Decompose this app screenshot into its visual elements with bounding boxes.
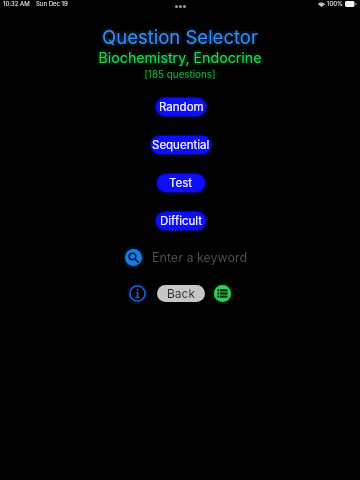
staticText: Biochemistry, Endocrine bbox=[0, 49, 360, 66]
button[interactable]: Test bbox=[153, 170, 209, 196]
staticText: Question Selector bbox=[2, 24, 360, 46]
staticText: Question Selector bbox=[0, 26, 358, 48]
button[interactable]: Info bbox=[129, 285, 146, 302]
staticText: Question Selector bbox=[2, 26, 360, 48]
button[interactable]: Back bbox=[157, 285, 205, 302]
staticText: Question Selector bbox=[0, 24, 360, 46]
button[interactable]: List bbox=[214, 285, 231, 302]
staticText: 10:32 AM bbox=[3, 0, 30, 7]
staticText: Biochemistry, Endocrine bbox=[2, 47, 360, 64]
staticText: [185 questions] bbox=[2, 71, 360, 83]
staticText: Biochemistry, Endocrine bbox=[0, 47, 360, 64]
staticText: [185 questions] bbox=[0, 69, 360, 81]
staticText: Sun Dec 19 bbox=[36, 0, 68, 7]
staticText: Difficult bbox=[160, 214, 203, 228]
staticText: Enter a keyword bbox=[152, 250, 248, 265]
staticText: Test bbox=[169, 176, 193, 190]
staticText: 100% bbox=[327, 0, 343, 7]
staticText: Biochemistry, Endocrine bbox=[2, 51, 360, 68]
staticText: [185 questions] bbox=[2, 69, 360, 81]
staticText: Question Selector bbox=[2, 28, 360, 50]
staticText: [185 questions] bbox=[0, 67, 360, 79]
staticText: [185 questions] bbox=[0, 69, 358, 81]
staticText: Question Selector bbox=[0, 28, 360, 50]
staticText: Back bbox=[167, 286, 196, 301]
button[interactable]: Sequential bbox=[147, 132, 215, 158]
staticText: Question Selector bbox=[0, 28, 358, 50]
button[interactable]: Difficult bbox=[152, 208, 210, 234]
staticText: Question Selector bbox=[0, 26, 360, 48]
staticText: [185 questions] bbox=[0, 71, 360, 83]
button[interactable]: Random bbox=[152, 94, 210, 120]
staticText: Biochemistry, Endocrine bbox=[2, 49, 360, 66]
staticText: [185 questions] bbox=[2, 67, 360, 79]
staticText: Biochemistry, Endocrine bbox=[0, 51, 358, 68]
staticText: [185 questions] bbox=[0, 67, 358, 79]
staticText: [185 questions] bbox=[0, 71, 358, 83]
staticText: Question Selector bbox=[0, 24, 358, 46]
staticText: Sequential bbox=[152, 138, 210, 152]
staticText: Biochemistry, Endocrine bbox=[0, 47, 358, 64]
button[interactable]: Search bbox=[125, 249, 142, 266]
staticText: Random bbox=[159, 100, 204, 114]
staticText: Biochemistry, Endocrine bbox=[0, 51, 360, 68]
staticText: Biochemistry, Endocrine bbox=[0, 49, 358, 66]
